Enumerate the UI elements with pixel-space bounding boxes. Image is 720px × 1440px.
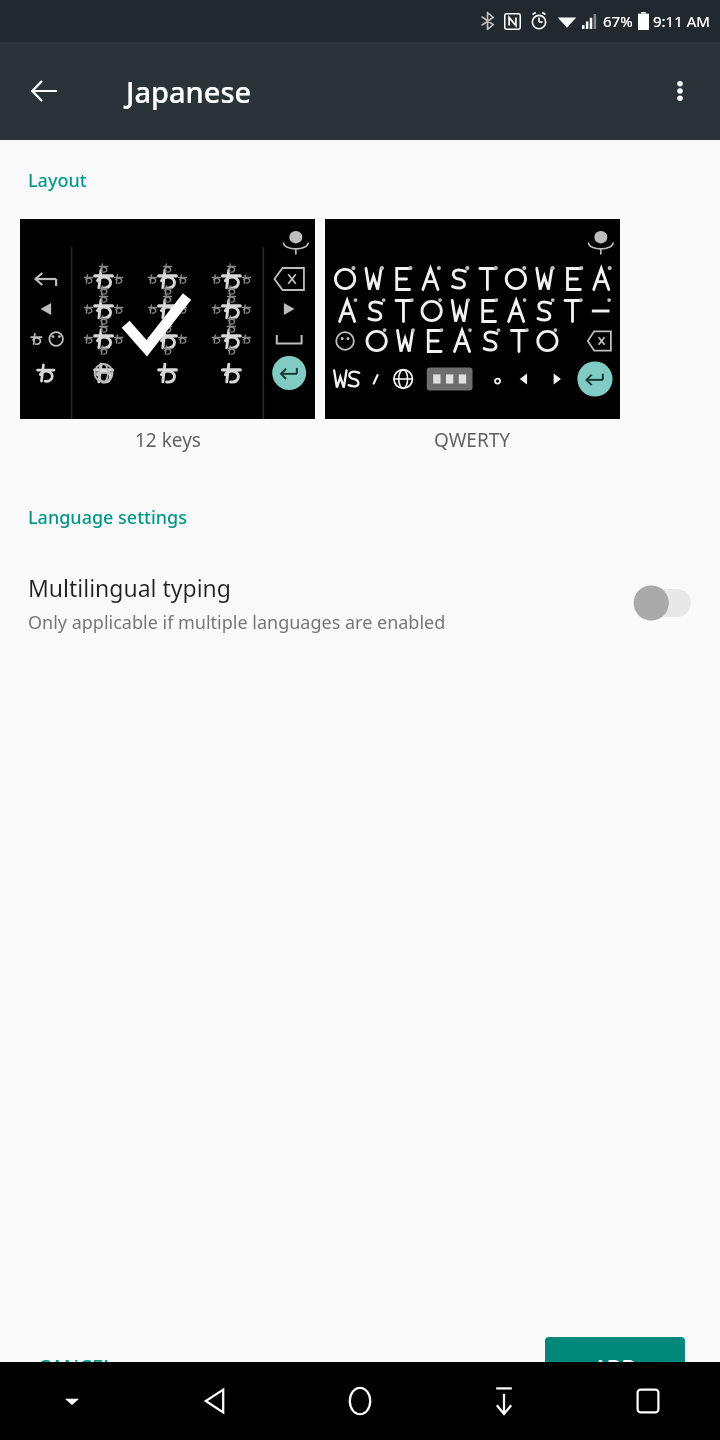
staticText: 12 keys: [135, 427, 201, 453]
button[interactable]: [20, 219, 315, 419]
staticText: CANCEL: [38, 1353, 114, 1380]
button[interactable]: Home: [288, 1362, 432, 1440]
button[interactable]: CANCEL: [18, 1341, 134, 1392]
staticText: ADD: [594, 1353, 637, 1380]
button[interactable]: [325, 219, 620, 419]
staticText: Only applicable if multiple languages ar…: [28, 610, 446, 635]
staticText: Japanese: [126, 72, 252, 111]
button[interactable]: Hide keyboard: [0, 1362, 144, 1440]
button[interactable]: Download: [432, 1362, 576, 1440]
button[interactable]: Multilingual typing: [0, 560, 720, 646]
staticText: 9:11 AM: [653, 11, 710, 31]
button[interactable]: Recent apps: [576, 1362, 720, 1440]
button[interactable]: Back: [144, 1362, 288, 1440]
staticText: Multilingual typing: [28, 572, 231, 603]
button[interactable]: ADD: [545, 1337, 685, 1395]
staticText: Language settings: [28, 505, 188, 530]
staticText: QWERTY: [434, 427, 511, 453]
button[interactable]: More options: [652, 63, 708, 119]
staticText: 67%: [603, 11, 633, 31]
staticText: Layout: [28, 168, 87, 193]
button[interactable]: Back: [16, 63, 72, 119]
